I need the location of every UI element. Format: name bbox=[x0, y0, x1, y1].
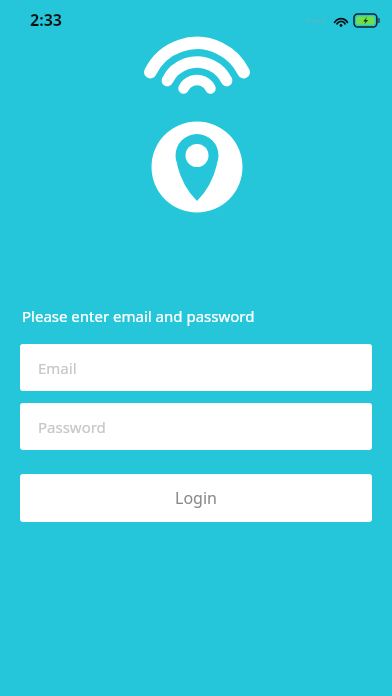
button[interactable]: Password bbox=[20, 403, 372, 450]
staticText: 2:33 bbox=[30, 9, 62, 31]
staticText: Password bbox=[38, 417, 106, 437]
staticText: Email bbox=[38, 358, 77, 378]
button[interactable]: Login bbox=[20, 474, 372, 522]
button[interactable]: Email bbox=[20, 344, 372, 391]
staticText: Please enter email and password bbox=[22, 306, 255, 326]
staticText: Login bbox=[175, 487, 217, 509]
